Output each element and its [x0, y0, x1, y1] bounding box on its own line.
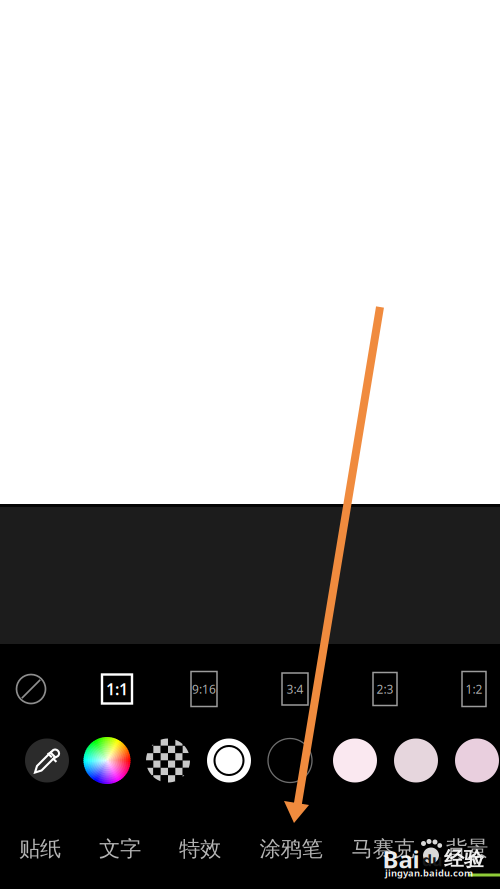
staticText: 经验: [444, 847, 484, 871]
staticText: 文字: [99, 836, 141, 862]
button[interactable]: 9:16: [180, 664, 228, 713]
staticText: Bai: [382, 843, 419, 875]
staticText: 2:3: [376, 681, 393, 697]
button[interactable]: 2:3: [362, 665, 408, 712]
button[interactable]: 贴纸: [0, 828, 80, 870]
staticText: 1:2: [465, 681, 482, 697]
button[interactable]: Transparent: [146, 738, 190, 782]
button[interactable]: 涂鸦笔: [251, 828, 331, 870]
button[interactable]: 1:2: [451, 664, 497, 713]
button[interactable]: Eyedropper: [25, 738, 69, 782]
button[interactable]: 1:1: [91, 667, 143, 710]
button[interactable]: Colour wheel: [83, 737, 130, 784]
button[interactable]: Black colour: [268, 738, 312, 782]
button[interactable]: Colour swatch: [394, 738, 438, 782]
staticText: 特效: [179, 836, 221, 862]
staticText: 9:16: [192, 681, 216, 697]
staticText: 马赛克: [351, 836, 414, 862]
staticText: 3:4: [286, 681, 303, 697]
button[interactable]: 马赛克: [343, 828, 423, 870]
button[interactable]: Colour swatch: [455, 738, 499, 782]
staticText: 背景: [446, 836, 488, 862]
staticText: jingyan.baidu.com: [385, 867, 473, 879]
button[interactable]: 特效: [160, 828, 240, 870]
staticText: 1:1: [106, 678, 128, 700]
button[interactable]: Colour swatch: [333, 738, 377, 782]
button[interactable]: 背景: [427, 828, 500, 870]
button[interactable]: 3:4: [271, 666, 319, 712]
staticText: du: [422, 849, 442, 871]
button[interactable]: White selected: [207, 738, 251, 782]
staticText: 涂鸦笔: [259, 836, 322, 862]
button[interactable]: 文字: [80, 828, 160, 870]
staticText: 贴纸: [19, 836, 61, 862]
button[interactable]: No crop: [9, 667, 53, 711]
